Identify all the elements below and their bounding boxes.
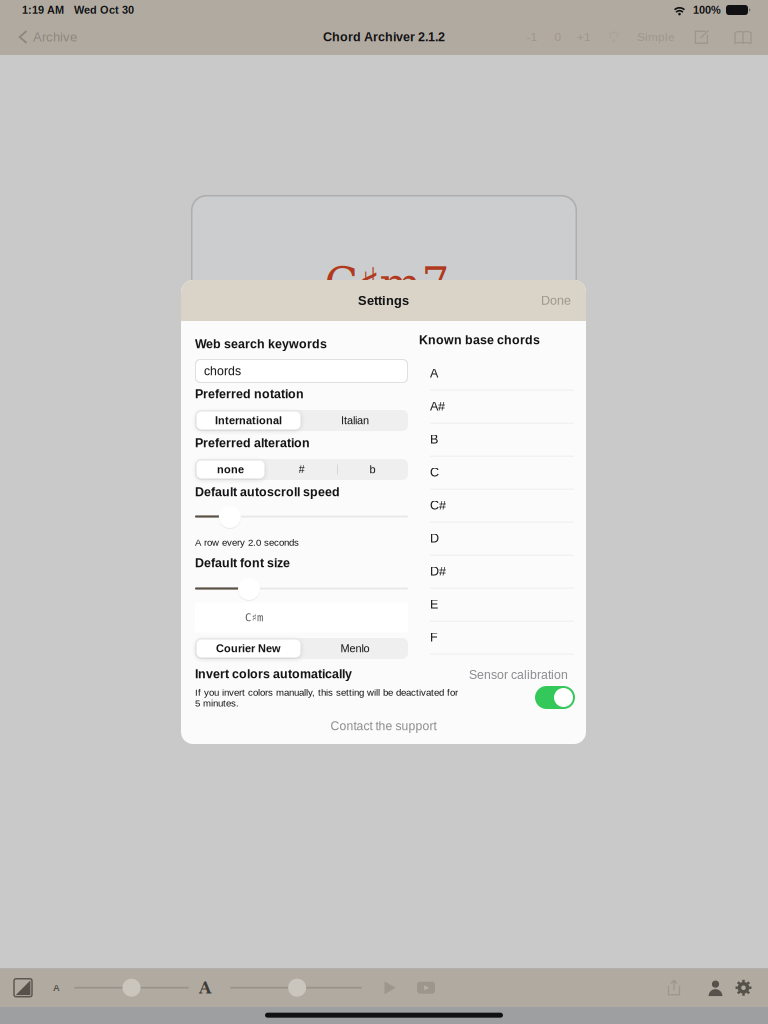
staticText: Contact the support xyxy=(330,719,436,733)
button[interactable]: Share xyxy=(666,968,682,1007)
staticText: # xyxy=(298,463,304,476)
staticText: F xyxy=(430,630,438,644)
button[interactable]: b xyxy=(337,459,408,480)
staticText: C♯m xyxy=(245,611,263,624)
staticText: 0 xyxy=(554,30,561,43)
button[interactable]: Archive xyxy=(0,19,89,55)
staticText: Italian xyxy=(341,414,369,427)
staticText: 1:19 AM xyxy=(22,4,64,16)
staticText: Chord Archiver 2.1.2 xyxy=(323,30,445,44)
button[interactable]: D# xyxy=(415,556,574,589)
button[interactable]: Play xyxy=(383,968,397,1007)
staticText: If you invert colors manually, this sett… xyxy=(195,687,458,708)
staticText: Settings xyxy=(358,293,409,308)
staticText: Simple xyxy=(637,30,675,43)
staticText: C# xyxy=(430,498,446,512)
button[interactable]: A# xyxy=(415,391,574,424)
button[interactable]: Adjust xyxy=(288,979,306,997)
button[interactable]: # xyxy=(266,459,337,480)
staticText: B xyxy=(430,432,438,446)
staticText: b xyxy=(369,463,375,476)
button[interactable]: Video xyxy=(417,968,435,1007)
button[interactable]: Library xyxy=(733,19,753,55)
button[interactable]: Simple xyxy=(633,19,679,55)
button[interactable]: A xyxy=(415,358,574,391)
button[interactable]: Edit xyxy=(693,19,711,55)
staticText: +1 xyxy=(577,30,591,43)
staticText: Web search keywords xyxy=(195,337,327,351)
staticText: Done xyxy=(541,293,571,307)
button[interactable]: Account xyxy=(707,968,724,1007)
staticText: Wed Oct 30 xyxy=(74,4,134,16)
button[interactable]: Sensor calibration xyxy=(535,686,575,709)
staticText: Sensor calibration xyxy=(469,668,568,682)
staticText: Preferred alteration xyxy=(195,436,310,450)
button[interactable]: C xyxy=(415,457,574,490)
staticText: D# xyxy=(430,564,446,578)
staticText: Default font size xyxy=(195,556,290,570)
staticText: International xyxy=(215,414,282,427)
button[interactable]: E xyxy=(415,589,574,622)
button[interactable]: Settings xyxy=(734,968,753,1007)
staticText: A xyxy=(53,982,60,993)
button[interactable]: Slider xyxy=(219,505,241,528)
staticText: Invert colors automatically xyxy=(195,667,352,681)
button[interactable]: Done xyxy=(507,280,571,321)
button[interactable]: Slider xyxy=(238,577,260,600)
button[interactable]: International xyxy=(195,410,302,431)
staticText: -1 xyxy=(526,30,537,43)
staticText: D xyxy=(430,531,439,545)
staticText: C♯m7 xyxy=(324,258,449,310)
button[interactable]: Courier New xyxy=(195,638,302,659)
staticText: 100% xyxy=(693,4,721,16)
staticText: Courier New xyxy=(216,642,281,655)
button[interactable]: Adjust xyxy=(122,979,140,997)
staticText: Default autoscroll speed xyxy=(195,485,340,499)
staticText: A xyxy=(199,978,211,997)
staticText: Menlo xyxy=(340,642,369,655)
staticText: Preferred notation xyxy=(195,387,304,401)
staticText: none xyxy=(217,463,244,476)
staticText: A# xyxy=(430,399,445,413)
staticText: A row every 2.0 seconds xyxy=(195,537,299,548)
staticText: Archive xyxy=(33,30,77,44)
staticText: E xyxy=(430,597,438,611)
button[interactable]: Contact the support xyxy=(181,717,586,735)
button[interactable]: B xyxy=(415,424,574,457)
staticText: C xyxy=(430,465,439,479)
staticText: Known base chords xyxy=(419,333,540,347)
button[interactable]: F xyxy=(415,622,574,655)
button[interactable]: C# xyxy=(415,490,574,523)
button[interactable]: Menlo xyxy=(302,638,408,659)
button[interactable]: none xyxy=(195,459,266,480)
staticText: chords xyxy=(204,364,241,378)
button[interactable]: D xyxy=(415,523,574,556)
button[interactable]: Italian xyxy=(302,410,408,431)
staticText: A xyxy=(430,366,438,380)
button[interactable]: Invert colours xyxy=(14,968,32,1007)
